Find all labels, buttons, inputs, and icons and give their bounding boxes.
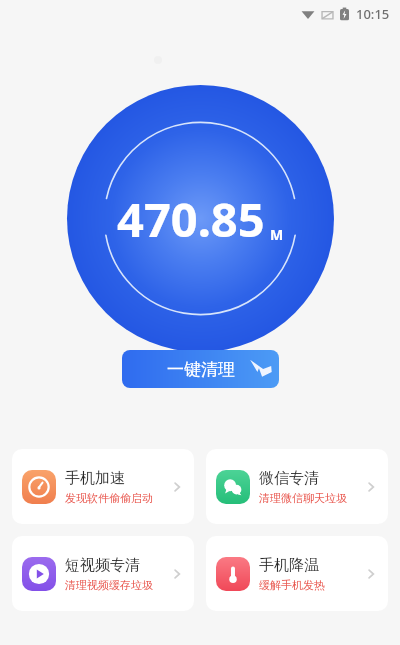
staticText: 手机加速 <box>65 469 125 488</box>
staticText: 发现软件偷偷启动 <box>65 491 153 505</box>
staticText: 短视频专清 <box>65 556 140 575</box>
other: 手机降温 <box>362 565 380 583</box>
other: 手机加速 <box>168 478 186 496</box>
staticText: 10:15 <box>356 5 390 23</box>
staticText: M <box>270 225 284 244</box>
staticText: 微信专清 <box>259 469 319 488</box>
staticText: 手机降温 <box>259 556 319 575</box>
staticText: 缓解手机发热 <box>259 578 325 592</box>
staticText: 一键清理 <box>167 359 235 380</box>
button[interactable]: 手机降温 <box>206 536 388 611</box>
button[interactable]: 短视频专清 <box>12 536 194 611</box>
staticText: 清理微信聊天垃圾 <box>259 491 347 505</box>
button[interactable]: 手机加速 <box>12 449 194 524</box>
other: 微信专清 <box>362 478 380 496</box>
button[interactable]: 微信专清 <box>206 449 388 524</box>
staticText: 清理视频缓存垃圾 <box>65 578 153 592</box>
button[interactable]: 一键清理 <box>122 350 279 388</box>
staticText: 470.85 <box>117 187 265 251</box>
other: 短视频专清 <box>168 565 186 583</box>
